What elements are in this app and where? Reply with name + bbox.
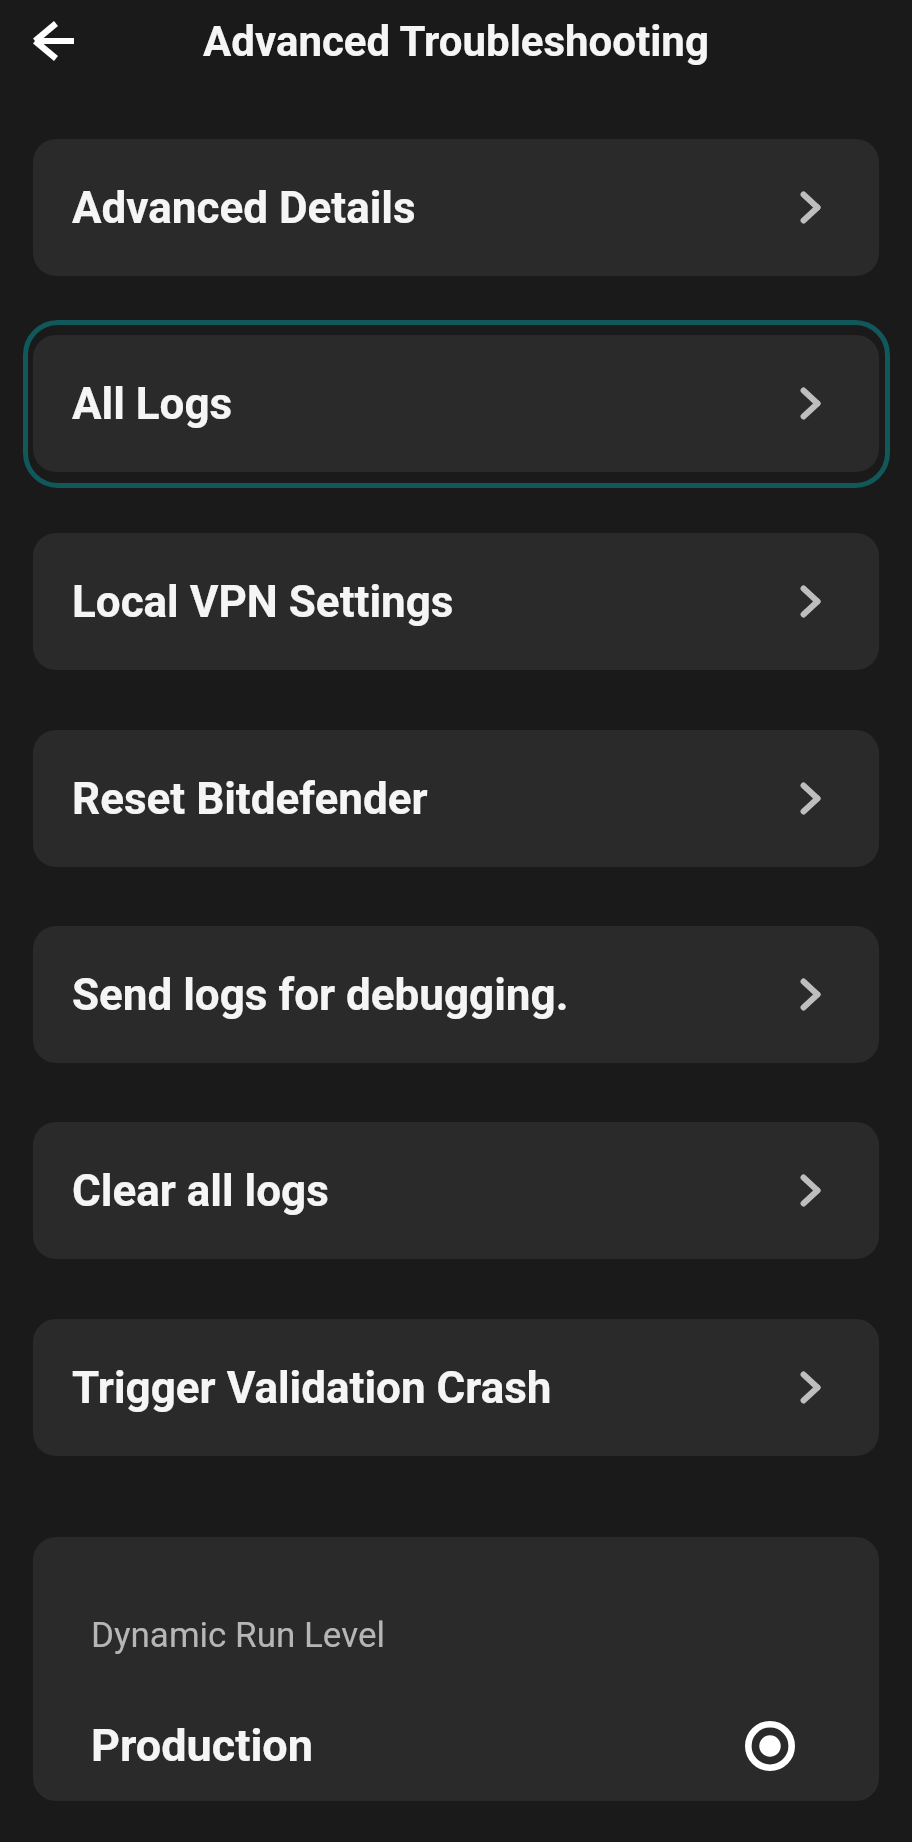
staticText: Reset Bitdefender: [72, 773, 428, 825]
button[interactable]: Clear all logs: [33, 1122, 879, 1259]
staticText: Local VPN Settings: [72, 576, 454, 628]
staticText: All Logs: [72, 378, 233, 430]
button[interactable]: Production: [33, 1690, 879, 1801]
button[interactable]: Navigate up: [22, 8, 88, 74]
staticText: Send logs for debugging.: [72, 969, 569, 1021]
button[interactable]: Trigger Validation Crash: [33, 1319, 879, 1456]
staticText: Production: [91, 1719, 313, 1772]
staticText: Advanced Troubleshooting: [203, 17, 709, 66]
staticText: Dynamic Run Level: [91, 1615, 385, 1656]
button[interactable]: Send logs for debugging.: [33, 926, 879, 1063]
button[interactable]: Advanced Details: [33, 139, 879, 276]
staticText: Advanced Details: [72, 182, 416, 234]
staticText: Clear all logs: [72, 1165, 329, 1217]
button[interactable]: Local VPN Settings: [33, 533, 879, 670]
staticText: Trigger Validation Crash: [72, 1362, 552, 1414]
button[interactable]: Reset Bitdefender: [33, 730, 879, 867]
button[interactable]: All Logs: [33, 335, 879, 472]
